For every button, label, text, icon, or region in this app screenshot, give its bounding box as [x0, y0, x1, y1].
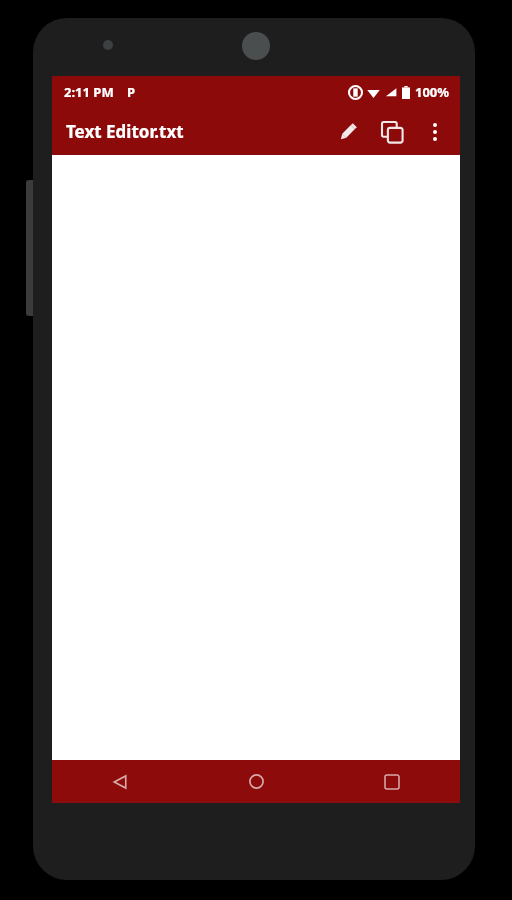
staticText: P	[127, 83, 136, 101]
button[interactable]: Back	[52, 760, 188, 803]
button[interactable]: Copy	[370, 110, 414, 154]
button[interactable]: More options	[414, 111, 456, 153]
staticText: 100%	[415, 83, 450, 101]
button[interactable]: Edit	[326, 110, 370, 154]
button[interactable]: Home	[188, 760, 324, 803]
button[interactable]: Recent apps	[324, 760, 460, 803]
staticText: Text Editor.txt	[66, 120, 184, 143]
staticText: 2:11 PM	[64, 83, 114, 101]
